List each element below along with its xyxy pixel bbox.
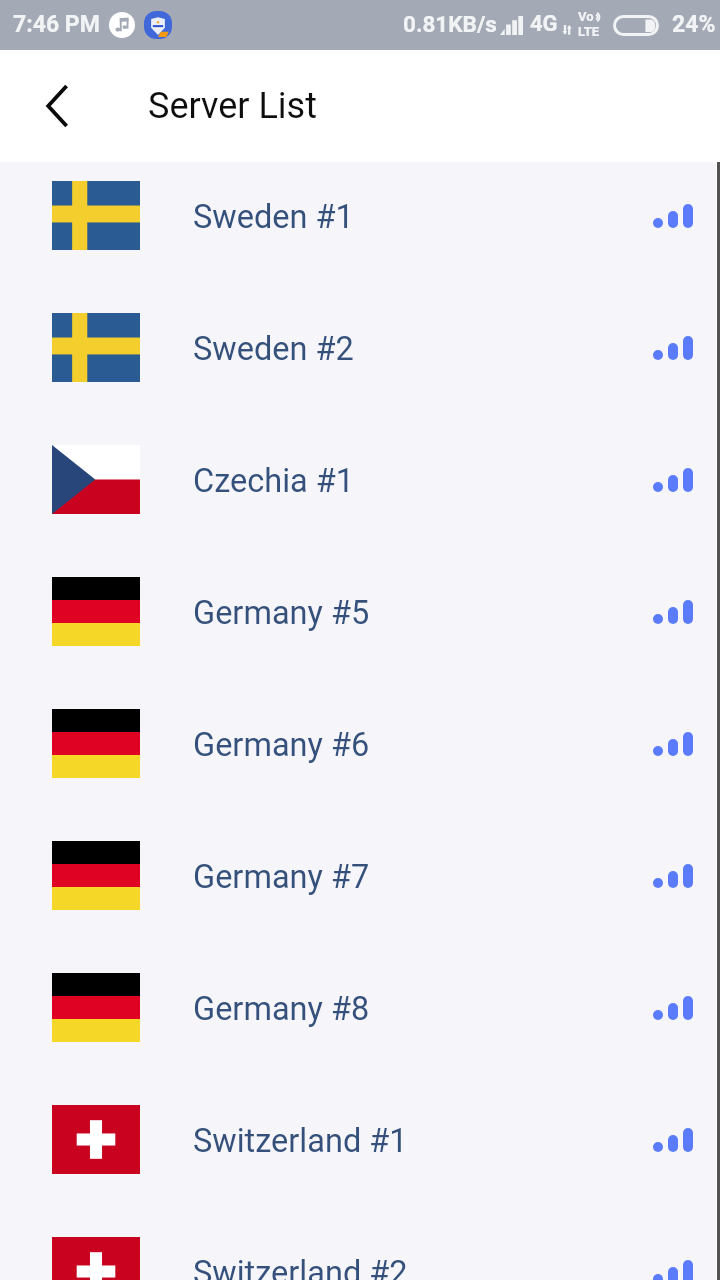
button[interactable]: Germany #8 [0, 941, 720, 1073]
staticText: Germany #5 [193, 594, 370, 632]
button[interactable]: Switzerland #1 [0, 1073, 720, 1205]
staticText: 0.81KB/s [403, 11, 497, 37]
button[interactable]: Back [20, 72, 88, 140]
button[interactable]: Sweden #1 [0, 149, 720, 281]
staticText: Germany #8 [193, 990, 370, 1028]
button[interactable]: Czechia #1 [0, 413, 720, 545]
staticText: Switzerland #1 [193, 1122, 408, 1160]
button[interactable]: Germany #6 [0, 677, 720, 809]
staticText: Germany #7 [193, 858, 370, 896]
staticText: Sweden #1 [193, 198, 354, 236]
staticText: 24% [672, 11, 716, 38]
button[interactable]: Germany #7 [0, 809, 720, 941]
button[interactable]: Switzerland #2 [0, 1205, 720, 1280]
staticText: Germany #6 [193, 726, 370, 764]
staticText: 7:46 PM [13, 11, 100, 38]
button[interactable]: Sweden #2 [0, 281, 720, 413]
staticText: Vo [578, 9, 594, 24]
staticText: LTE [578, 24, 600, 39]
button[interactable]: Germany #5 [0, 545, 720, 677]
staticText: 4G [530, 11, 558, 37]
staticText: Switzerland #2 [193, 1254, 408, 1280]
staticText: Sweden #2 [193, 330, 354, 368]
staticText: Server List [148, 85, 317, 127]
staticText: Czechia #1 [193, 462, 355, 500]
